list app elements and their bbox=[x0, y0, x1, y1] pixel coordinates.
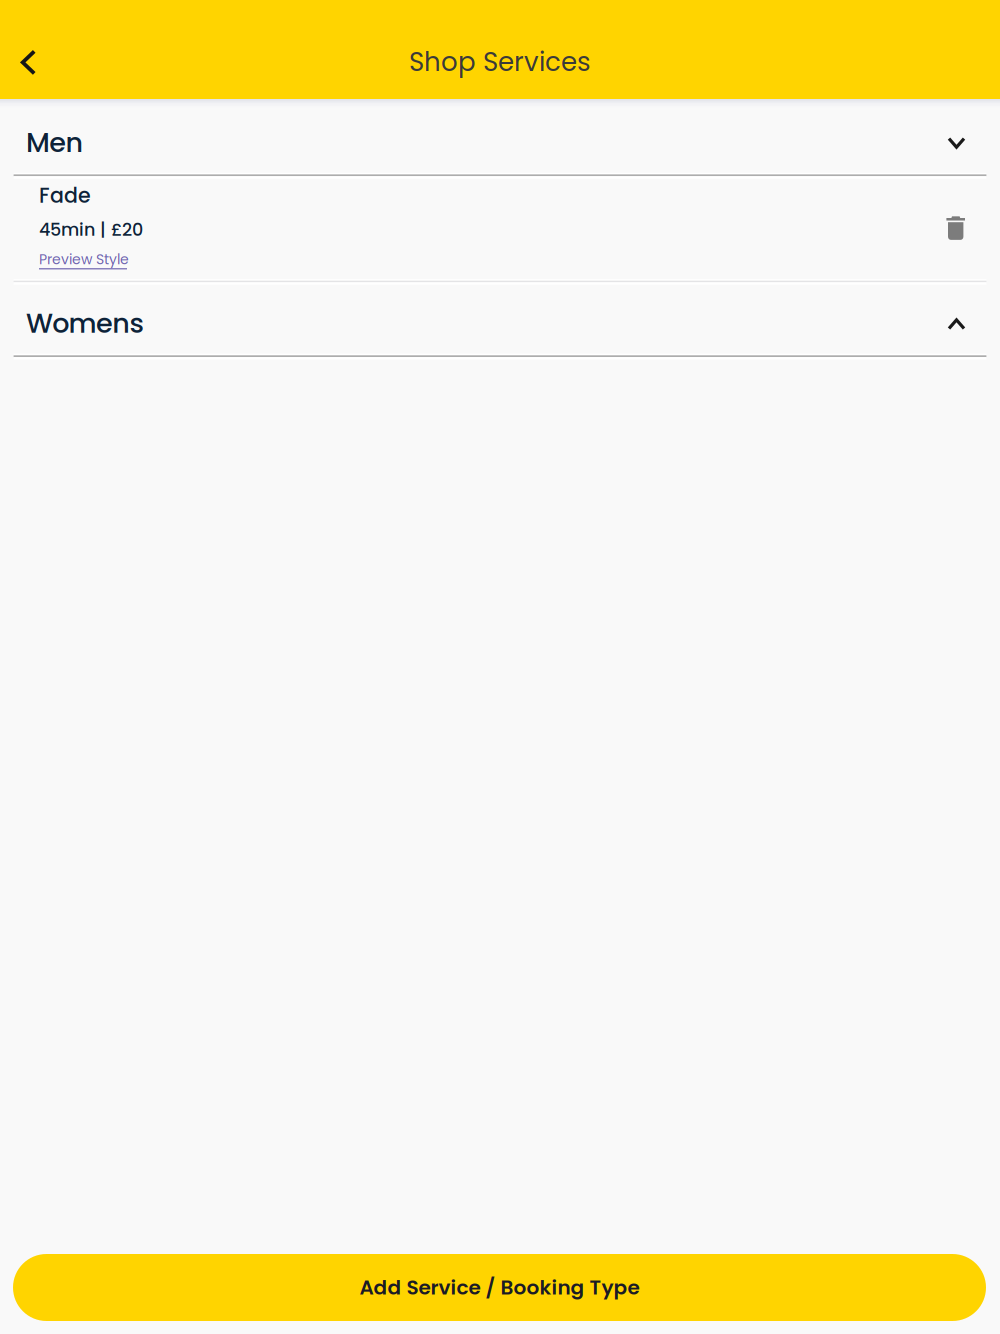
button[interactable]: Back bbox=[0, 0, 60, 99]
button[interactable]: Womens bbox=[0, 285, 1000, 354]
button[interactable]: Delete Fade bbox=[933, 201, 976, 249]
button[interactable]: Preview Style bbox=[39, 250, 129, 269]
staticText: Preview Style bbox=[39, 250, 129, 269]
button[interactable]: Add Service / Booking Type bbox=[13, 1254, 986, 1321]
staticText: 45min | £20 bbox=[39, 217, 143, 242]
staticText: Shop Services bbox=[409, 44, 591, 80]
staticText: Fade bbox=[39, 181, 91, 210]
staticText: Womens bbox=[26, 304, 143, 342]
staticText: Men bbox=[26, 124, 84, 161]
staticText: Add Service / Booking Type bbox=[359, 1273, 639, 1301]
button[interactable]: Men bbox=[0, 99, 1000, 173]
